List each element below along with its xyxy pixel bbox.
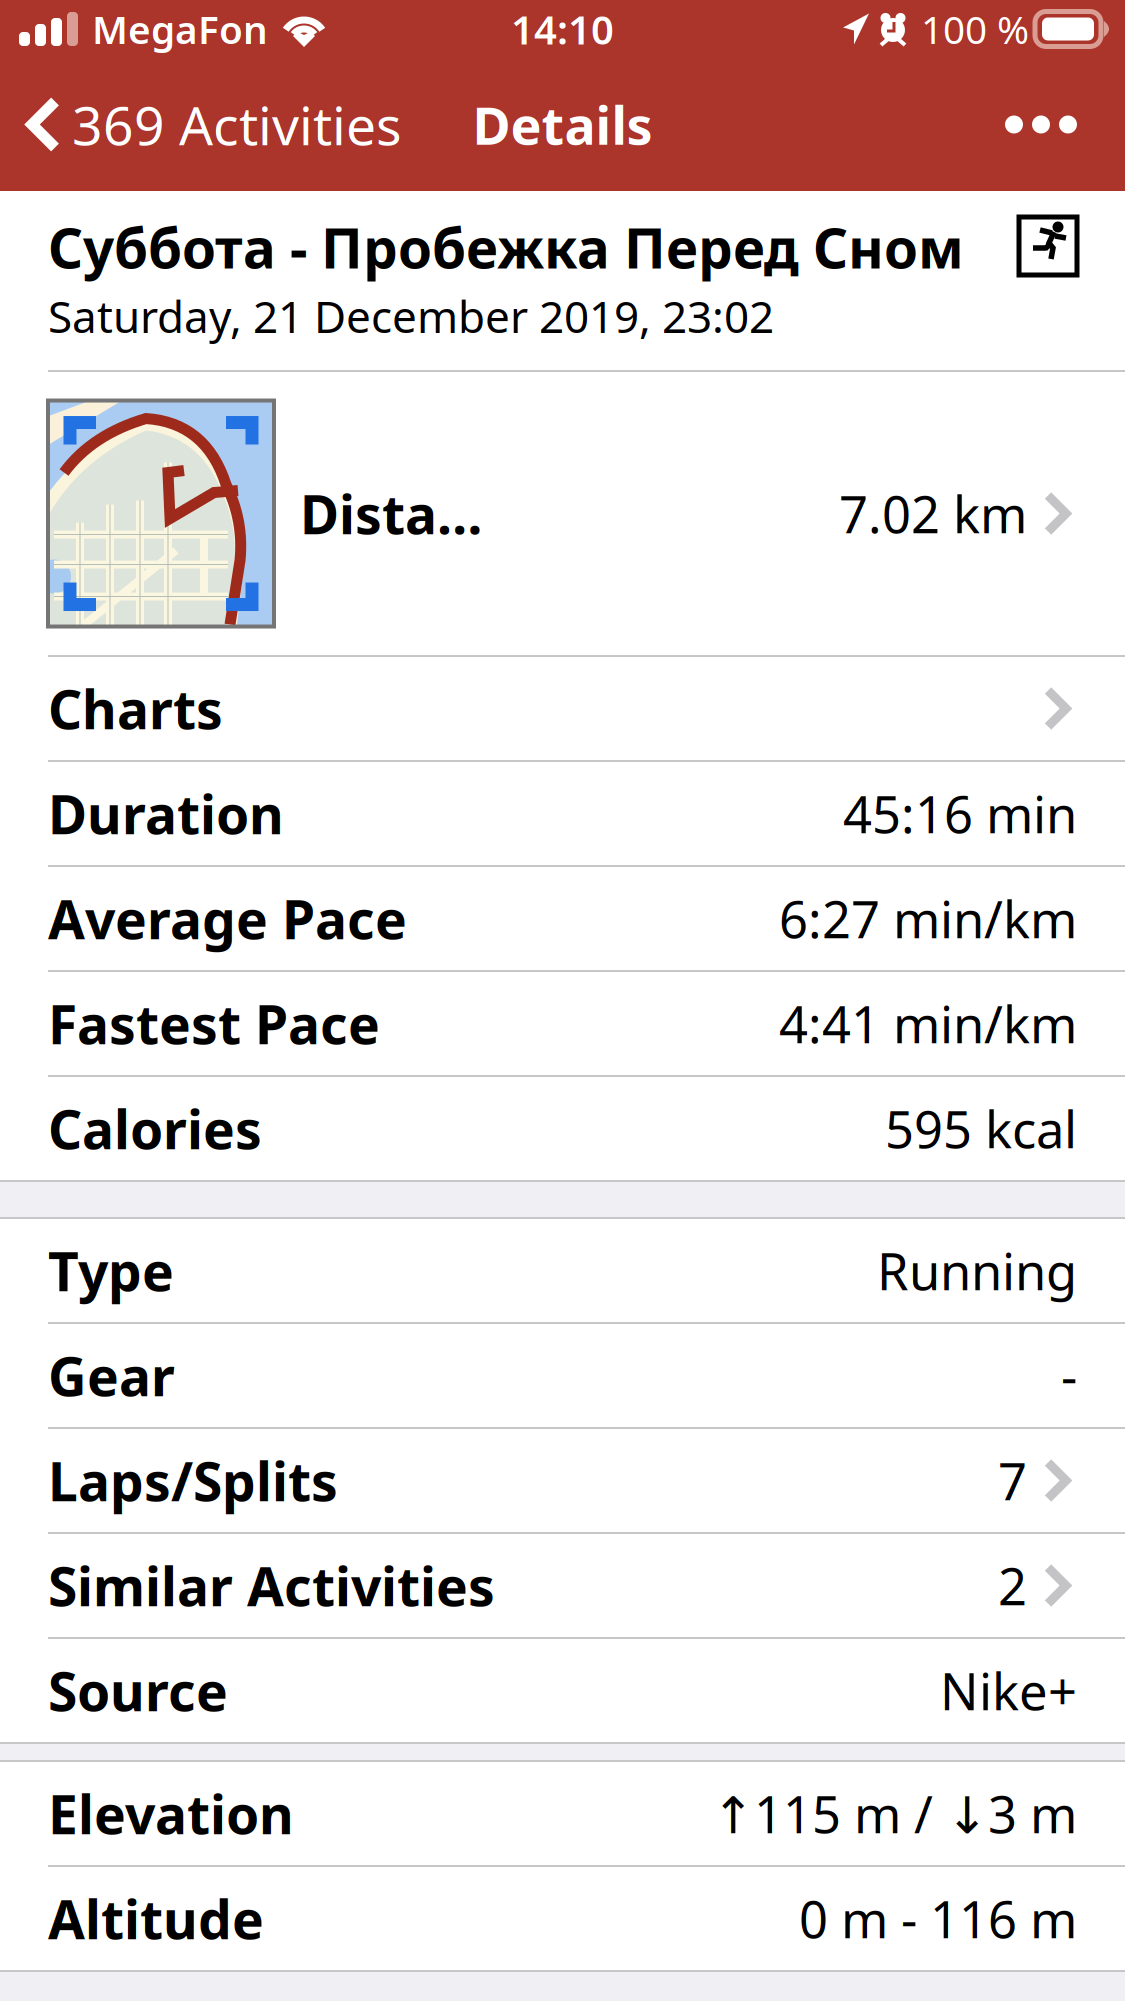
staticText: Fastest Pace (48, 988, 380, 1059)
button[interactable]: Type (0, 1219, 1125, 1322)
button[interactable]: Laps/Splits (0, 1429, 1125, 1532)
staticText: Elevation (48, 1778, 294, 1849)
staticText: 7.02 km (839, 480, 1027, 547)
staticText: 0 m - 116 m (799, 1885, 1077, 1952)
button[interactable]: Fastest Pace (0, 972, 1125, 1075)
staticText: 2 (998, 1552, 1027, 1619)
button[interactable]: Calories (0, 1077, 1125, 1180)
staticText: ↑115 m / ↓3 m (712, 1780, 1077, 1847)
staticText: Laps/Splits (48, 1445, 338, 1516)
button[interactable]: Gear (0, 1324, 1125, 1427)
staticText: Average Pace (48, 883, 407, 954)
staticText: Dista… (300, 478, 483, 549)
staticText: 7 (998, 1447, 1027, 1514)
staticText: Nike+ (940, 1657, 1077, 1724)
staticText: Gear (48, 1340, 175, 1411)
staticText: Similar Activities (48, 1550, 495, 1621)
staticText: Saturday, 21 December 2019, 23:02 (48, 287, 774, 345)
staticText: 14:10 (511, 2, 614, 55)
staticText: Details (472, 90, 652, 159)
staticText: 45:16 min (843, 780, 1077, 847)
button[interactable]: Source (0, 1639, 1125, 1742)
staticText: - (1061, 1342, 1077, 1409)
staticText: Running (877, 1237, 1077, 1304)
button[interactable]: Altitude (0, 1867, 1125, 1970)
staticText: Altitude (48, 1883, 264, 1954)
staticText: MegaFon (92, 3, 268, 55)
button[interactable]: 369 Activities (0, 58, 414, 191)
staticText: 369 Activities (72, 89, 402, 160)
button[interactable]: Average Pace (0, 867, 1125, 970)
staticText: Type (48, 1235, 174, 1306)
button[interactable]: Elevation (0, 1762, 1125, 1865)
staticText: 4:41 min/km (779, 990, 1077, 1057)
button[interactable]: Dista… (0, 372, 1125, 655)
staticText: 595 kcal (885, 1095, 1077, 1162)
button[interactable]: Charts (0, 657, 1125, 760)
button[interactable]: Similar Activities (0, 1534, 1125, 1637)
staticText: Суббота - Пробежка Перед Сном (48, 211, 964, 284)
staticText: 6:27 min/km (779, 885, 1077, 952)
staticText: Calories (48, 1093, 262, 1164)
staticText: 100 % (921, 3, 1029, 55)
button[interactable]: Duration (0, 762, 1125, 865)
staticText: Charts (48, 673, 223, 744)
button[interactable]: More options (1005, 58, 1125, 191)
staticText: Source (48, 1655, 228, 1726)
staticText: Duration (48, 778, 284, 849)
